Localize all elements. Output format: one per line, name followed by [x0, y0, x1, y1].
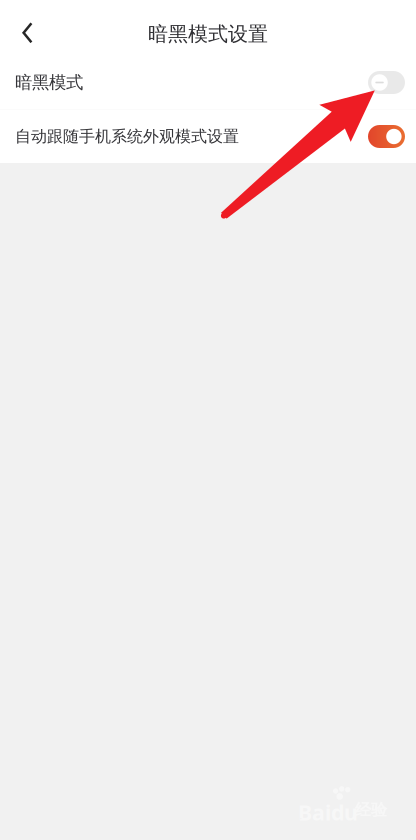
button[interactable]: 自动跟随手机系统外观模式设置 — [0, 110, 416, 163]
staticText: 自动跟随手机系统外观模式设置 — [15, 127, 239, 146]
button[interactable]: 暗黑模式开关 — [368, 71, 405, 94]
button[interactable]: 自动跟随系统开关 — [368, 125, 405, 148]
button[interactable]: 返回 — [5, 11, 49, 55]
staticText: 暗黑模式 — [15, 72, 83, 93]
button[interactable]: 暗黑模式 — [0, 56, 416, 109]
staticText: 暗黑模式设置 — [148, 22, 268, 46]
